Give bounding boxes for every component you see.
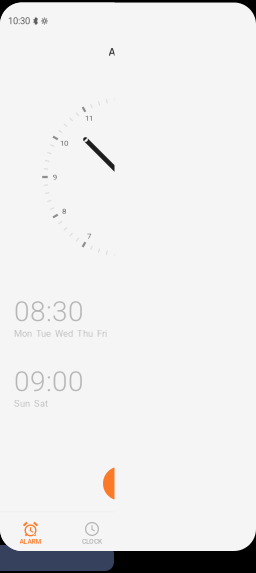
staticText: 10:30 [8,15,30,26]
staticText: CLOCK [82,537,102,545]
staticText: Alarm [108,46,137,58]
staticText: ALARM [19,537,41,545]
button[interactable]: Add alarm [103,466,137,500]
button[interactable]: 08:30 [14,302,114,342]
staticText: 09:00 [14,365,84,398]
staticText: Sun Sat [14,398,48,409]
button[interactable]: CLOCK [61,520,123,547]
staticText: 7 [87,231,91,241]
staticText: 8 [62,206,66,216]
staticText: 08:30 [14,295,84,328]
button[interactable]: 09:00 [14,372,114,412]
staticText: 10 [60,138,68,148]
button[interactable]: ALARM [0,520,61,547]
staticText: 9 [53,172,57,182]
staticText: Mon Tue Wed Thu Fri [14,328,107,339]
staticText: 11 [85,113,93,123]
